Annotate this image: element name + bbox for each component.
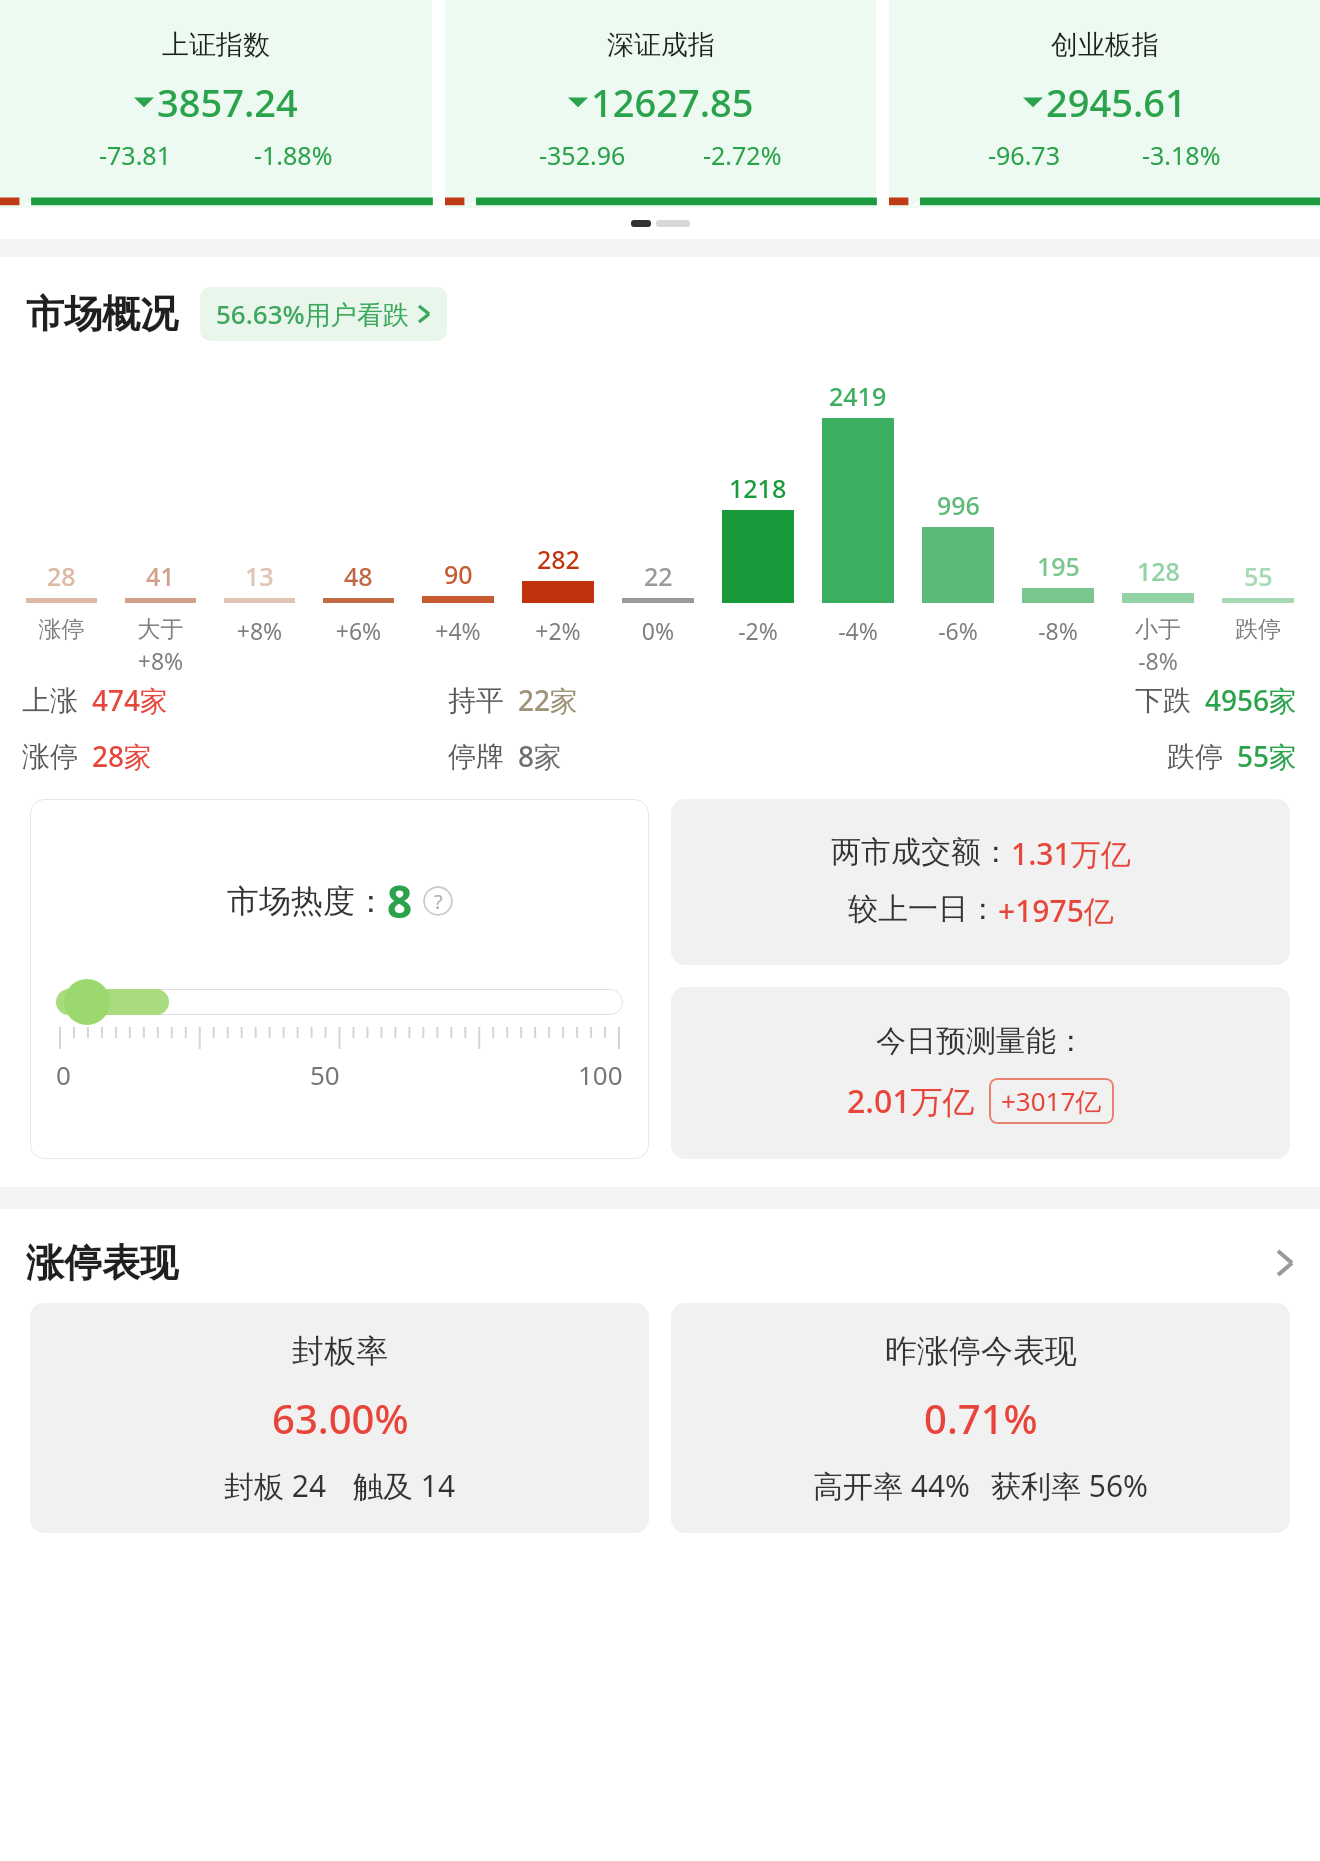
staticText: -4% bbox=[808, 615, 908, 646]
staticText: +6% bbox=[309, 615, 408, 646]
staticText: 3857.24 bbox=[157, 76, 298, 128]
staticText: 创业板指 bbox=[1051, 28, 1159, 62]
staticText: 2945.61 bbox=[1046, 76, 1187, 128]
staticText: +1975亿 bbox=[998, 890, 1114, 931]
staticText: 41 bbox=[146, 559, 175, 593]
staticText: 22家 bbox=[518, 681, 579, 719]
staticText: 上涨 bbox=[22, 683, 78, 718]
staticText: -1.88% bbox=[254, 138, 333, 172]
staticText: 474家 bbox=[92, 681, 169, 719]
staticText: -2.72% bbox=[703, 138, 782, 172]
staticText: +2% bbox=[508, 615, 608, 646]
staticText: 0.71% bbox=[924, 1391, 1038, 1445]
staticText: 128 bbox=[1137, 554, 1180, 588]
staticText: 55家 bbox=[1237, 737, 1298, 775]
staticText: 上证指数 bbox=[162, 28, 270, 62]
button[interactable]: 涨停表现 bbox=[26, 1239, 1294, 1287]
staticText: +3017亿 bbox=[1001, 1083, 1102, 1119]
staticText: 195 bbox=[1037, 549, 1080, 583]
button[interactable]: 创业板指 bbox=[889, 0, 1320, 208]
staticText: 1218 bbox=[729, 471, 787, 505]
other: 更多 bbox=[1276, 1248, 1294, 1278]
staticText: 90 bbox=[444, 557, 473, 591]
staticText: -96.73 bbox=[988, 138, 1060, 172]
staticText: 深证成指 bbox=[607, 28, 715, 62]
staticText: 较上一日： bbox=[848, 890, 998, 928]
button[interactable]: 帮助 bbox=[423, 886, 453, 916]
staticText: 2.01万亿 bbox=[847, 1079, 975, 1123]
staticText: 28 bbox=[47, 559, 76, 593]
staticText: 8 bbox=[387, 871, 413, 931]
staticText: 停牌 bbox=[448, 739, 504, 774]
staticText: 涨停 bbox=[22, 739, 78, 774]
staticText: 56.63%用户看跌 bbox=[216, 296, 409, 332]
staticText: 跌停 bbox=[1208, 615, 1308, 644]
staticText: 282 bbox=[537, 542, 580, 576]
staticText: 两市成交额： bbox=[831, 833, 1011, 871]
staticText: 涨停 bbox=[12, 615, 111, 644]
staticText: -8% bbox=[1008, 615, 1108, 646]
staticText: -3.18% bbox=[1142, 138, 1221, 172]
staticText: +8% bbox=[210, 615, 309, 646]
staticText: 跌停 bbox=[1167, 739, 1223, 774]
staticText: 昨涨停今表现 bbox=[885, 1331, 1077, 1371]
staticText: 4956家 bbox=[1205, 681, 1298, 719]
staticText: -2% bbox=[708, 615, 808, 646]
staticText: 0% bbox=[608, 615, 708, 646]
staticText: 触及 14 bbox=[353, 1465, 456, 1506]
staticText: 封板率 bbox=[292, 1331, 388, 1371]
button[interactable]: 56.63%用户看跌 bbox=[200, 287, 447, 341]
staticText: 封板 24 bbox=[224, 1465, 327, 1506]
staticText: 996 bbox=[937, 488, 980, 522]
staticText: 22 bbox=[644, 559, 673, 593]
staticText: 50 bbox=[310, 1057, 340, 1092]
staticText: 大于 +8% bbox=[111, 615, 210, 673]
staticText: 市场热度： bbox=[227, 881, 387, 921]
staticText: 1.31万亿 bbox=[1011, 833, 1131, 874]
staticText: 8家 bbox=[518, 737, 563, 775]
staticText: 市场概况 bbox=[26, 290, 178, 338]
button[interactable]: 两市成交额： bbox=[671, 799, 1290, 965]
staticText: 28家 bbox=[92, 737, 153, 775]
staticText: 12627.85 bbox=[591, 76, 754, 128]
staticText: 今日预测量能： bbox=[876, 1022, 1086, 1060]
button[interactable]: 深证成指 bbox=[445, 0, 876, 208]
button[interactable]: 今日预测量能： bbox=[671, 987, 1290, 1159]
staticText: 高开率 44% bbox=[813, 1465, 971, 1506]
staticText: +4% bbox=[408, 615, 508, 646]
staticText: 持平 bbox=[448, 683, 504, 718]
staticText: 100 bbox=[578, 1057, 623, 1092]
staticText: 小于 -8% bbox=[1108, 615, 1208, 673]
staticText: 0 bbox=[56, 1057, 71, 1092]
staticText: -352.96 bbox=[539, 138, 626, 172]
button[interactable]: 市场热度： bbox=[30, 799, 649, 1159]
staticText: 涨停表现 bbox=[26, 1239, 178, 1287]
staticText: -73.81 bbox=[99, 138, 171, 172]
staticText: ? bbox=[434, 888, 443, 915]
staticText: 13 bbox=[245, 559, 274, 593]
button[interactable]: 昨涨停今表现 bbox=[671, 1303, 1290, 1533]
button[interactable]: 封板率 bbox=[30, 1303, 649, 1533]
button[interactable]: 上证指数 bbox=[0, 0, 432, 208]
staticText: 下跌 bbox=[1135, 683, 1191, 718]
staticText: -6% bbox=[908, 615, 1008, 646]
staticText: 2419 bbox=[829, 379, 887, 413]
staticText: 63.00% bbox=[272, 1391, 409, 1445]
staticText: 48 bbox=[344, 559, 373, 593]
staticText: 获利率 56% bbox=[991, 1465, 1149, 1506]
staticText: 55 bbox=[1244, 559, 1273, 593]
